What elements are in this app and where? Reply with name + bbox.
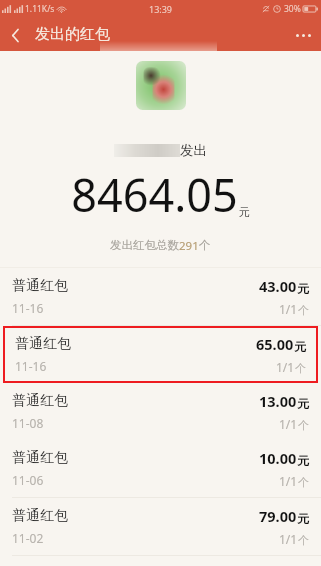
staticText: 1/1 bbox=[276, 359, 295, 375]
staticText: 普通红包 bbox=[12, 449, 68, 467]
button[interactable]: 普通红包 bbox=[0, 383, 321, 440]
staticText: 10.00 bbox=[259, 448, 297, 468]
button[interactable]: 普通红包 bbox=[0, 440, 321, 498]
staticText: 1/1 bbox=[279, 531, 298, 547]
staticText: 发出的红包 bbox=[35, 25, 110, 44]
staticText: 普通红包 bbox=[12, 392, 68, 410]
button[interactable]: 普通红包 bbox=[0, 498, 321, 556]
staticText: 普通红包 bbox=[12, 277, 68, 295]
staticText: 元 bbox=[239, 205, 250, 219]
staticText: 元 bbox=[297, 511, 309, 526]
staticText: 11-02 bbox=[12, 530, 44, 546]
staticText: 元 bbox=[294, 339, 306, 354]
staticText: 元 bbox=[297, 453, 309, 468]
staticText: 65.00 bbox=[256, 334, 294, 354]
staticText: 79.00 bbox=[259, 506, 297, 526]
staticText: 43.00 bbox=[259, 276, 297, 296]
staticText: 发出 bbox=[180, 142, 207, 159]
staticText: 个 bbox=[298, 303, 309, 317]
staticText: 个 bbox=[298, 418, 309, 432]
staticText: 普通红包 bbox=[15, 335, 71, 353]
button[interactable]: More options bbox=[285, 20, 321, 50]
staticText: 1/1 bbox=[279, 416, 298, 432]
staticText: 个 bbox=[295, 361, 306, 375]
staticText: 13.00 bbox=[259, 391, 297, 411]
staticText: 1/1 bbox=[279, 301, 298, 317]
staticText: 13:39 bbox=[149, 3, 173, 15]
button[interactable]: 普通红包 bbox=[0, 268, 321, 326]
staticText: 291 bbox=[179, 238, 199, 254]
staticText: 30% bbox=[284, 3, 301, 15]
staticText: 个 bbox=[298, 533, 309, 547]
staticText: 11-16 bbox=[12, 300, 44, 316]
staticText: 8464.05 bbox=[71, 164, 238, 225]
staticText: 1.11K/s bbox=[25, 3, 55, 15]
staticText: 发出红包总数 bbox=[110, 238, 179, 252]
staticText: 11-08 bbox=[12, 415, 44, 431]
staticText: 11-06 bbox=[12, 472, 44, 488]
staticText: 元 bbox=[297, 396, 309, 411]
staticText: 11-16 bbox=[15, 358, 47, 374]
staticText: 1/1 bbox=[279, 473, 298, 489]
staticText: 个 bbox=[298, 475, 309, 489]
staticText: 元 bbox=[297, 281, 309, 296]
staticText: 个 bbox=[199, 238, 211, 252]
staticText: 普通红包 bbox=[12, 507, 68, 525]
button[interactable]: Back bbox=[0, 20, 30, 50]
button[interactable]: 普通红包 bbox=[3, 326, 318, 383]
